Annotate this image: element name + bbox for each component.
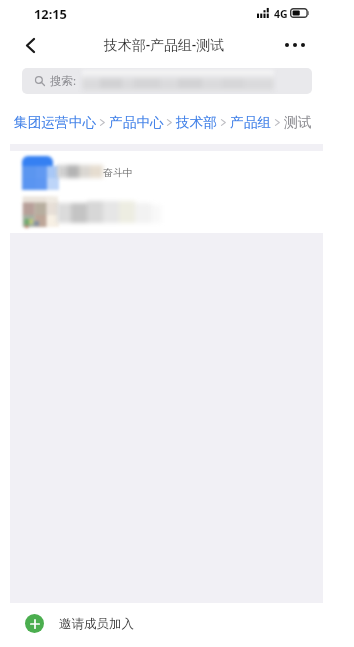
button[interactable]: More options (277, 27, 313, 62)
button[interactable]: Back (14, 29, 46, 61)
staticText: 邀请成员加入 (59, 616, 134, 632)
button[interactable]: 奋斗中 (0, 151, 354, 192)
button[interactable]: 邀请成员加入 (0, 603, 354, 647)
button[interactable] (0, 192, 354, 233)
staticText: 12:15 (34, 5, 67, 22)
button[interactable]: 产品中心 (109, 114, 164, 131)
staticText: 测试 (284, 114, 312, 131)
staticText: 4G (274, 7, 288, 21)
button[interactable]: 集团运营中心 (14, 114, 97, 131)
staticText: 技术部-产品组-测试 (104, 35, 225, 54)
button[interactable]: 搜索: (22, 68, 312, 94)
button[interactable]: 产品组 (230, 114, 272, 131)
staticText: 搜索: (50, 73, 77, 89)
button[interactable]: 技术部 (176, 114, 218, 131)
staticText: 奋斗中 (103, 166, 133, 179)
